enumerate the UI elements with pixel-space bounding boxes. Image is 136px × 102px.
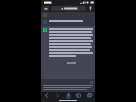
button[interactable] [63,61,80,65]
button[interactable]: Address bar, chat.openai.com [51,6,86,11]
button[interactable]: Share [65,92,72,99]
button[interactable]: Back [43,92,50,99]
button[interactable]: Text size options [43,6,49,11]
button[interactable]: Forward [54,92,61,99]
button[interactable]: Bookmarks [75,92,82,99]
button[interactable]: Tabs [86,92,93,99]
button[interactable]: Voice search [88,6,93,11]
